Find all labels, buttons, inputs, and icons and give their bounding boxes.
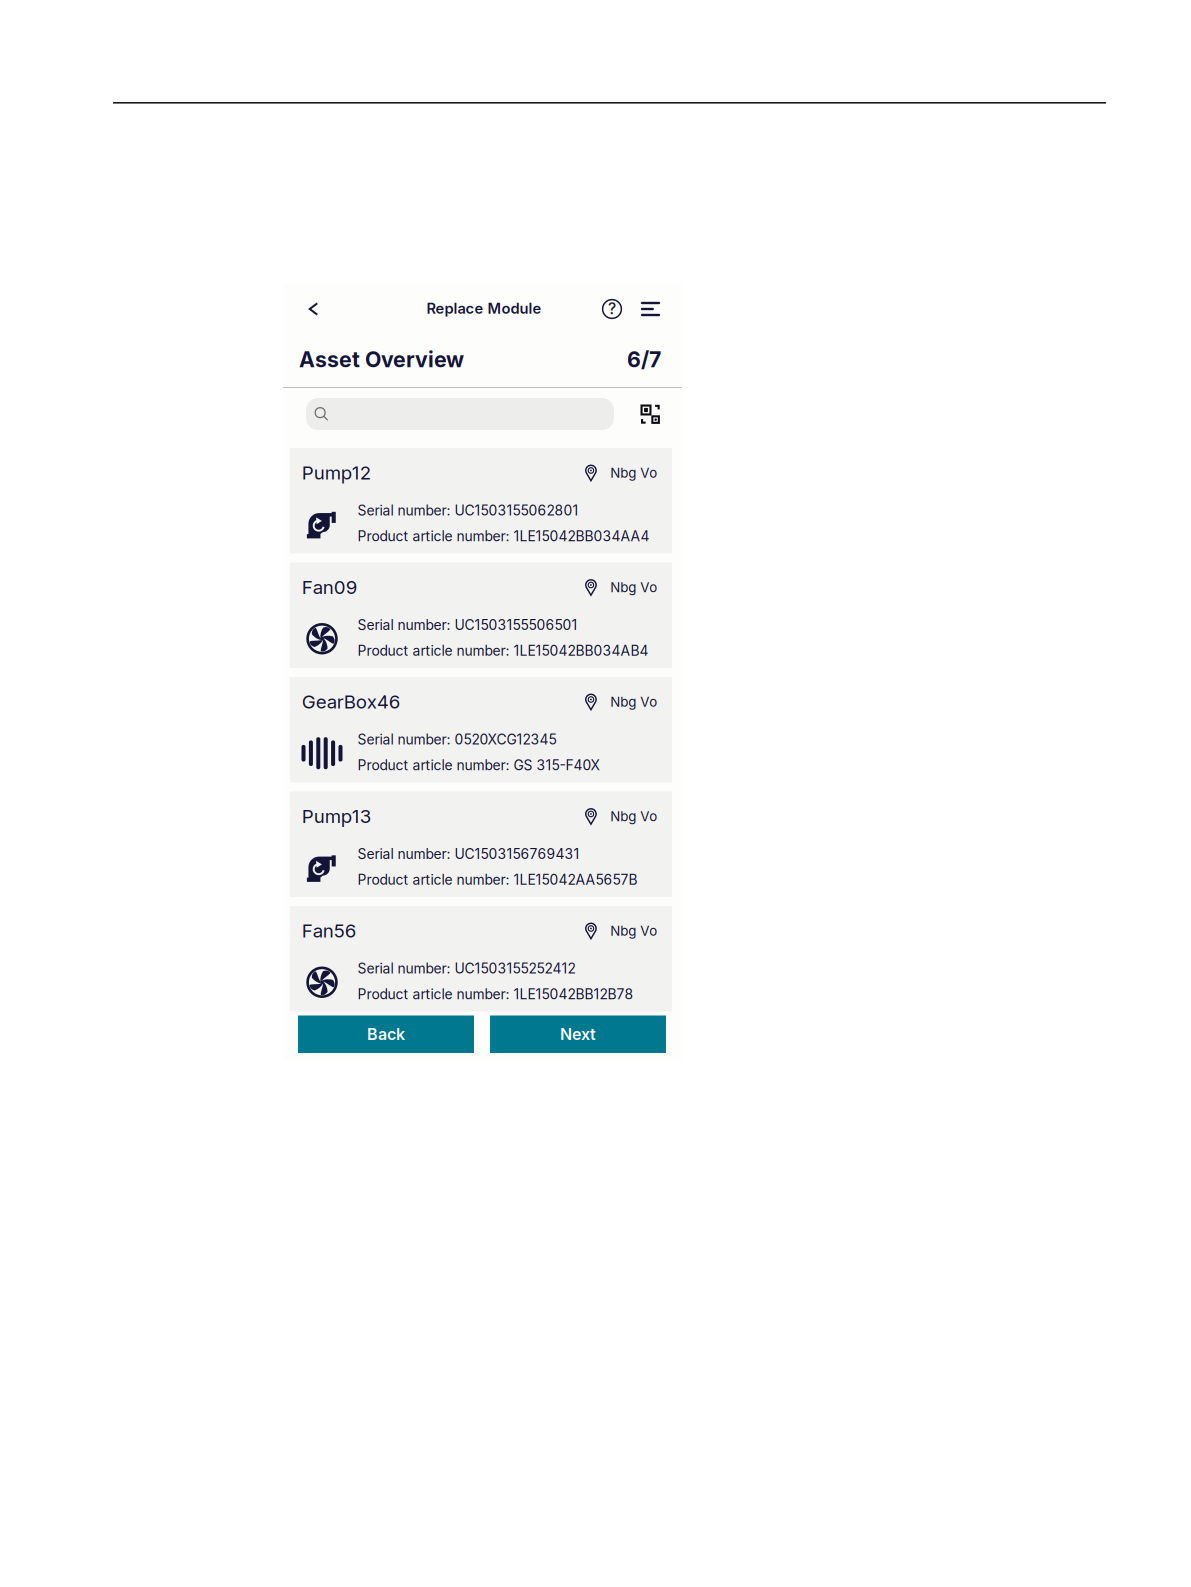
staticText: Nbg Vo <box>610 694 657 710</box>
staticText: Serial number: UC1503156769431 <box>357 845 579 862</box>
staticText: Product article number: 1LE15042BB12B78 <box>357 986 633 1002</box>
staticText: Fan09 <box>302 576 358 599</box>
staticText: Serial number: 0520XCG12345 <box>357 731 556 748</box>
staticText: Product article number: 1LE15042BB034AB4 <box>357 642 648 659</box>
staticText: Serial number: UC1503155252412 <box>357 960 575 977</box>
button[interactable]: Fan09 <box>290 562 672 668</box>
staticText: Asset Overview <box>299 347 464 372</box>
button[interactable]: Next <box>490 1015 666 1053</box>
staticText: Fan56 <box>302 919 357 942</box>
staticText: Nbg Vo <box>610 808 657 824</box>
button[interactable]: GearBox46 <box>290 677 672 782</box>
button[interactable]: Fan56 <box>290 906 672 1011</box>
staticText: ? <box>608 299 616 318</box>
button[interactable]: Scan QR code <box>636 398 656 430</box>
staticText: Product article number: GS 315-F40X <box>357 757 599 773</box>
staticText: Pump12 <box>302 461 371 484</box>
button[interactable]: Replace Module <box>419 295 549 321</box>
button[interactable]: Menu <box>635 292 665 326</box>
staticText: Nbg Vo <box>610 923 657 939</box>
staticText: Next <box>560 1025 596 1044</box>
staticText: Replace Module <box>426 300 541 317</box>
staticText: Nbg Vo <box>610 579 657 595</box>
staticText: Back <box>367 1025 405 1044</box>
button[interactable]: Pump13 <box>290 791 672 897</box>
staticText: GearBox46 <box>302 690 401 713</box>
staticText: Serial number: UC1503155506501 <box>357 616 577 633</box>
staticText: Product article number: 1LE15042BB034AA4 <box>357 528 649 544</box>
staticText: 6/7 <box>627 347 661 372</box>
staticText: Product article number: 1LE15042AA5657B <box>357 871 637 888</box>
staticText: Pump13 <box>302 805 372 828</box>
staticText: Serial number: UC1503155062801 <box>357 502 578 519</box>
button[interactable]: Back <box>298 1015 474 1053</box>
button[interactable]: Pump12 <box>290 448 672 553</box>
staticText: Nbg Vo <box>610 465 657 481</box>
button[interactable]: Help <box>597 292 627 326</box>
button[interactable]: Back <box>299 292 329 326</box>
